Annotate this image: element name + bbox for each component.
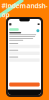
staticText: #indemandshop [1,1,47,19]
